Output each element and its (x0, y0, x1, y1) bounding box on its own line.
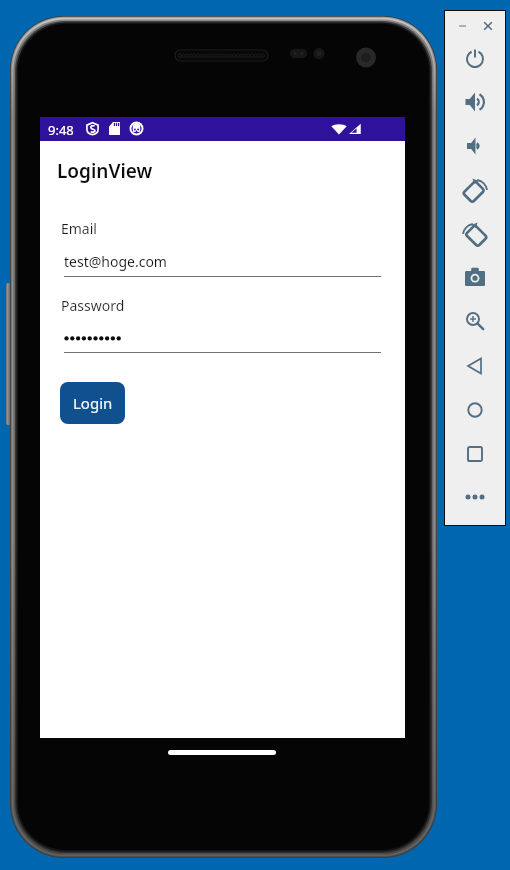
button[interactable]: Take screenshot (460, 262, 490, 292)
button[interactable]: Home (460, 395, 490, 425)
button[interactable]: More (460, 482, 490, 512)
button[interactable]: Overview (460, 439, 490, 469)
button[interactable]: Close (479, 17, 497, 35)
button[interactable]: Volume down (460, 131, 490, 161)
staticText: 9:48 (48, 121, 74, 139)
button[interactable]: Login (60, 382, 125, 424)
button[interactable]: Zoom (460, 306, 490, 336)
button[interactable]: Power (460, 43, 490, 73)
staticText: LoginView (57, 158, 153, 184)
staticText: Password (61, 296, 125, 315)
button[interactable]: Volume up (460, 87, 490, 117)
button[interactable] (62, 327, 382, 354)
button[interactable]: Rotate left (460, 175, 490, 205)
button[interactable]: Rotate right (460, 219, 490, 249)
button[interactable]: test@hoge.com (62, 249, 382, 277)
staticText: Login (73, 393, 113, 413)
staticText: Email (61, 219, 97, 238)
button[interactable]: Minimize (453, 17, 471, 35)
staticText: test@hoge.com (64, 252, 167, 271)
button[interactable]: Back (460, 351, 490, 381)
